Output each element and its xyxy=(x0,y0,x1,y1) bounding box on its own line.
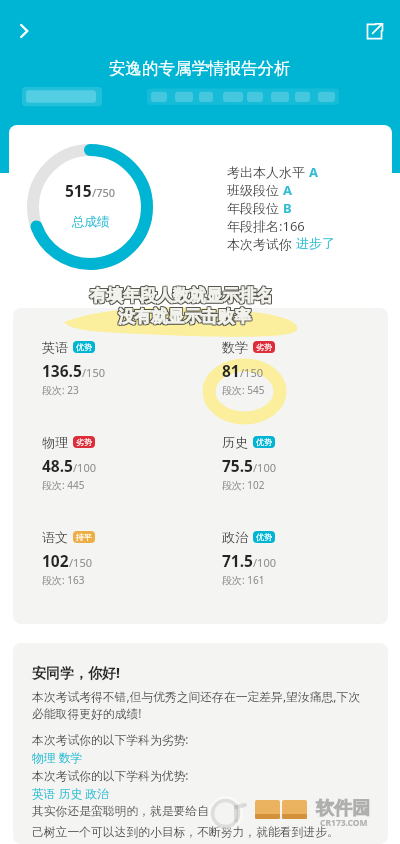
staticText: 安同学，你好! xyxy=(32,663,120,682)
staticText: 有填年段人数就显示排名 xyxy=(90,286,273,307)
staticText: A xyxy=(309,163,318,181)
staticText: 年段段位 xyxy=(227,199,283,217)
staticText: 有填年段人数就显示排名 xyxy=(91,286,274,307)
staticText: /150 xyxy=(69,555,92,570)
staticText: 段次: 163 xyxy=(42,573,85,587)
staticText: CR173.COM xyxy=(320,817,368,829)
staticText: /100 xyxy=(253,460,276,475)
staticText: 75.5 xyxy=(222,455,253,476)
staticText: 考出本人水平 xyxy=(227,163,309,181)
staticText: 持平 xyxy=(76,532,92,542)
staticText: 语文 xyxy=(42,529,68,545)
staticText: /150 xyxy=(82,365,105,380)
staticText: 劣势 xyxy=(76,437,92,447)
staticText: A xyxy=(283,181,292,199)
staticText: 有填年段人数就显示排名 xyxy=(90,285,273,306)
staticText: 没有就显示击败率 xyxy=(117,305,250,326)
button[interactable]: Share xyxy=(356,13,392,49)
staticText: 有填年段人数就显示排名 xyxy=(91,285,274,306)
staticText: /100 xyxy=(253,555,276,570)
staticText: /150 xyxy=(240,365,263,380)
staticText: 物理 数学 xyxy=(32,749,83,765)
staticText: 没有就显示击败率 xyxy=(117,307,250,328)
staticText: 历史 xyxy=(222,434,248,450)
staticText: 段次: 445 xyxy=(42,478,85,492)
staticText: 段次: 23 xyxy=(42,383,79,397)
staticText: 总成绩 xyxy=(72,214,110,230)
staticText: 136.5 xyxy=(42,360,82,381)
button[interactable]: 语文 xyxy=(42,529,95,587)
staticText: 数学 xyxy=(222,339,248,355)
staticText: 优势 xyxy=(256,532,272,542)
staticText: 515 xyxy=(65,180,92,201)
staticText: 段次: 545 xyxy=(222,383,265,397)
staticText: 81 xyxy=(222,360,240,381)
staticText: 年段排名:166 xyxy=(227,217,305,235)
staticText: 英语 xyxy=(42,339,68,355)
staticText: 有填年段人数就显示排名 xyxy=(89,286,272,307)
staticText: 本次考试你的以下学科为优势: xyxy=(32,767,189,783)
button[interactable]: 物理 xyxy=(42,434,96,492)
staticText: 物理 xyxy=(42,434,68,450)
staticText: 没有就显示击败率 xyxy=(117,306,250,327)
staticText: 班级段位 xyxy=(227,181,283,199)
staticText: B xyxy=(283,199,292,217)
staticText: 本次考试考得不错,但与优秀之间还存在一定差异,望汝痛思,下次必能取得更好的成绩! xyxy=(32,688,366,721)
staticText: 没有就显示击败率 xyxy=(118,306,251,327)
staticText: 其实你还是蛮聪明的，就是要给自 xyxy=(32,804,209,819)
staticText: 有填年段人数就显示排名 xyxy=(90,284,273,305)
staticText: 没有就显示击败率 xyxy=(119,307,252,328)
staticText: 有填年段人数就显示排名 xyxy=(89,285,272,306)
button[interactable]: 政治 xyxy=(222,529,276,587)
staticText: 有填年段人数就显示排名 xyxy=(89,284,272,305)
staticText: 英语 历史 政治 xyxy=(32,785,109,801)
staticText: 48.5 xyxy=(42,455,73,476)
staticText: 本次考试你的以下学科为劣势: xyxy=(32,731,189,747)
staticText: 段次: 102 xyxy=(222,478,265,492)
staticText: /750 xyxy=(92,185,116,200)
staticText: 优势 xyxy=(256,437,272,447)
staticText: 没有就显示击败率 xyxy=(119,305,252,326)
staticText: 没有就显示击败率 xyxy=(118,305,251,326)
staticText: 102 xyxy=(42,550,69,571)
staticText: 软件园 xyxy=(316,797,370,820)
button[interactable]: 数学 xyxy=(222,339,275,397)
staticText: 有填年段人数就显示排名 xyxy=(91,284,274,305)
staticText: 本次考试你 xyxy=(227,235,296,253)
staticText: 政治 xyxy=(222,529,248,545)
button[interactable]: Back xyxy=(6,13,42,49)
staticText: 没有就显示击败率 xyxy=(118,307,251,328)
staticText: /100 xyxy=(73,460,96,475)
button[interactable]: 历史 xyxy=(222,434,276,492)
staticText: 己树立一个可以达到的小目标，不断努力，就能看到进步。 xyxy=(32,825,339,840)
staticText: 71.5 xyxy=(222,550,253,571)
staticText: 安逸的专属学情报告分析 xyxy=(109,58,291,79)
button[interactable]: 英语 xyxy=(42,339,105,397)
staticText: 进步了 xyxy=(296,235,335,251)
staticText: 优势 xyxy=(76,342,92,352)
staticText: 没有就显示击败率 xyxy=(119,306,252,327)
staticText: 劣势 xyxy=(256,342,272,352)
staticText: 段次: 161 xyxy=(222,573,265,587)
